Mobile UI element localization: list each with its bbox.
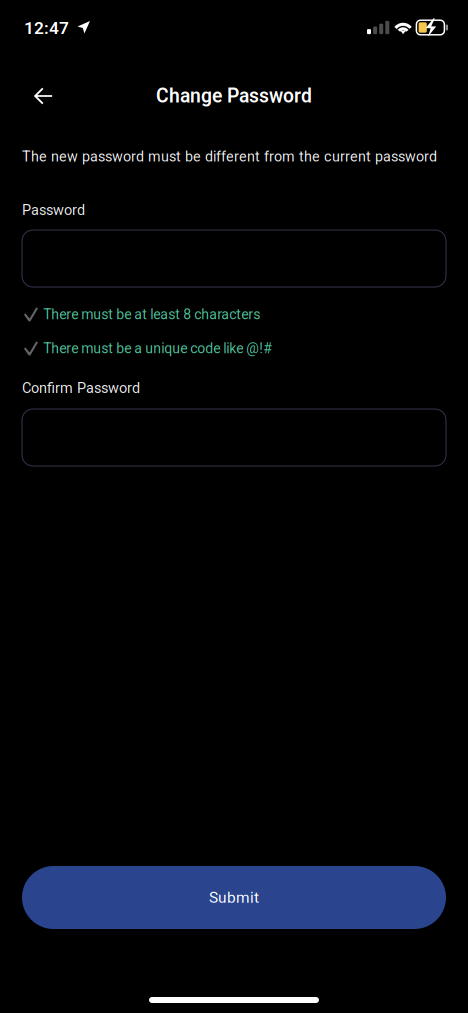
staticText: Submit <box>209 888 259 906</box>
staticText: Change Password <box>156 85 312 107</box>
staticText: There must be at least 8 characters <box>43 306 260 323</box>
staticText: There must be a unique code like @!# <box>43 340 272 357</box>
staticText: Password <box>22 201 85 218</box>
button[interactable]: Back <box>21 75 65 117</box>
staticText: The new password must be different from … <box>22 148 437 165</box>
staticText: 12:47 <box>24 18 69 38</box>
button[interactable]: Submit <box>22 866 446 929</box>
staticText: Confirm Password <box>22 379 140 396</box>
